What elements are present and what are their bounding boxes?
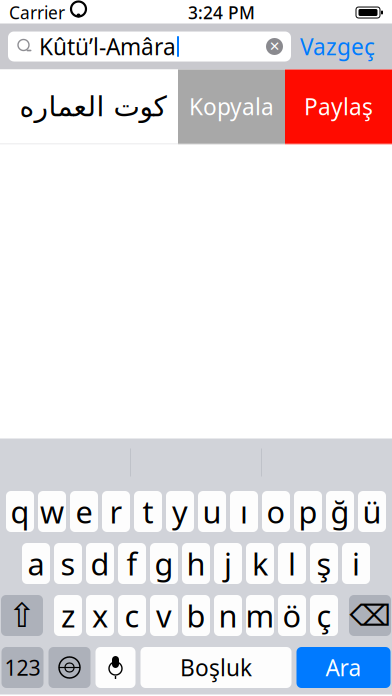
button[interactable]: Kopyala [178,69,285,143]
button[interactable]: Dictate [95,647,135,688]
button[interactable]: كوت العماره [0,69,178,143]
staticText: 3:24 PM [188,1,255,24]
button[interactable]: f [118,543,146,584]
staticText: Ara [325,652,361,682]
staticText: e [75,491,92,532]
staticText: Boşluk [180,652,252,682]
staticText: q [10,491,29,532]
staticText: i [352,543,360,584]
button[interactable]: Shift [1,595,43,636]
button[interactable]: n [214,595,242,636]
staticText: g [154,543,173,584]
button[interactable]: Ara [296,647,390,688]
button[interactable]: Delete [349,595,391,636]
staticText: Vazgeç [300,31,375,61]
staticText: ü [362,491,381,532]
button[interactable]: ş [310,543,338,584]
staticText: ç [316,595,331,636]
staticText: Carrier [9,1,65,24]
staticText: l [288,543,296,584]
staticText: o [266,491,285,532]
staticText: j [224,543,232,584]
button[interactable]: b [182,595,210,636]
button[interactable]: Vazgeç [291,31,384,61]
staticText: r [109,491,122,532]
staticText: c [124,595,139,636]
staticText: ğ [330,491,349,532]
button[interactable]: v [150,595,178,636]
button[interactable]: j [214,543,242,584]
staticText: z [61,595,75,636]
button[interactable]: 123 [1,647,43,688]
button[interactable]: Clear text [266,38,291,55]
button[interactable]: Paylaş [285,69,392,143]
button[interactable]: q [6,491,34,532]
button[interactable]: Next keyboard [48,647,90,688]
button[interactable]: p [294,491,322,532]
button[interactable]: z [54,595,82,636]
staticText: Paylaş [304,91,373,121]
button[interactable]: x [86,595,114,636]
staticText: v [156,595,172,636]
button[interactable]: k [246,543,274,584]
staticText: ⇧ [8,597,36,634]
staticText: Kûtü’l-Amâra [39,31,176,61]
button[interactable]: t [134,491,162,532]
staticText: Kopyala [189,91,274,121]
staticText: ⌫ [349,599,390,632]
button[interactable]: y [166,491,194,532]
button[interactable]: s [54,543,82,584]
staticText: n [218,595,237,636]
button[interactable]: w [38,491,66,532]
button[interactable]: ç [310,595,338,636]
button[interactable]: ğ [326,491,354,532]
staticText: f [126,543,137,584]
staticText: p [298,491,317,532]
staticText: t [142,491,153,532]
staticText: s [60,543,75,584]
staticText: h [186,543,205,584]
button[interactable]: ı [230,491,258,532]
button[interactable]: a [22,543,50,584]
staticText: m [245,595,274,636]
button[interactable]: ü [358,491,386,532]
button[interactable]: Boşluk [140,647,291,688]
staticText: b [186,595,205,636]
staticText: ö [282,595,301,636]
button[interactable]: u [198,491,226,532]
staticText: y [172,491,188,532]
staticText: كوت العماره [19,91,166,122]
button[interactable]: c [118,595,146,636]
button[interactable]: l [278,543,306,584]
button[interactable]: m [246,595,274,636]
staticText: ı [240,491,248,532]
staticText: w [40,491,64,532]
staticText: d [90,543,109,584]
button[interactable]: i [342,543,370,584]
button[interactable]: e [70,491,98,532]
button[interactable]: o [262,491,290,532]
staticText: 123 [4,653,40,682]
button[interactable]: ö [278,595,306,636]
staticText: a [27,543,44,584]
staticText: k [252,543,268,584]
staticText: ✕ [269,39,280,54]
button[interactable]: g [150,543,178,584]
staticText: x [92,595,108,636]
button[interactable]: r [102,491,130,532]
staticText: ş [316,543,331,584]
staticText: u [202,491,221,532]
button[interactable]: h [182,543,210,584]
button[interactable]: d [86,543,114,584]
